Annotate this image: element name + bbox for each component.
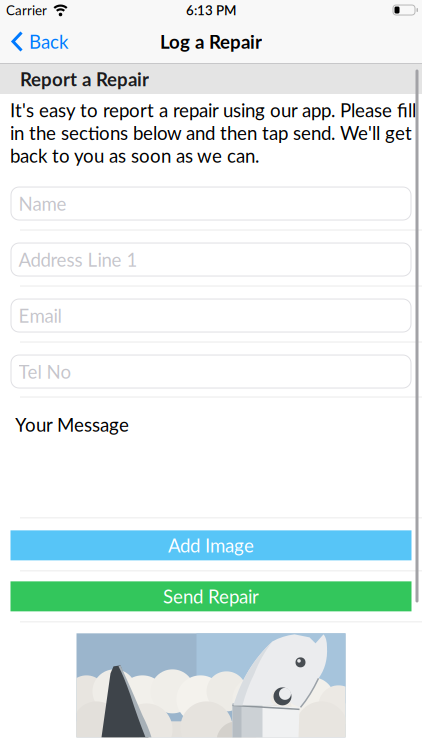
button[interactable]: Send Repair xyxy=(10,581,411,611)
staticText: back to you as soon as we can. xyxy=(10,145,259,166)
staticText: Name xyxy=(18,193,66,214)
staticText: in the sections below and then tap send.… xyxy=(10,122,412,144)
staticText: Report a Repair xyxy=(20,68,149,90)
button[interactable]: Add Image xyxy=(10,530,411,560)
staticText: Back xyxy=(29,31,68,52)
staticText: Send Repair xyxy=(163,585,259,607)
staticText: Carrier xyxy=(6,2,47,18)
button[interactable]: Email xyxy=(10,298,411,332)
staticText: Log a Repair xyxy=(160,31,262,52)
button[interactable]: Address Line 1 xyxy=(10,242,411,276)
staticText: It's easy to report a repair using our a… xyxy=(10,99,416,121)
staticText: Email xyxy=(18,305,61,326)
staticText: Tel No xyxy=(18,361,71,382)
staticText: Your Message xyxy=(15,413,129,435)
button[interactable]: Tel No xyxy=(10,354,411,388)
button[interactable]: Back xyxy=(11,31,68,52)
staticText: 6:13 PM xyxy=(186,2,236,18)
button[interactable]: Name xyxy=(10,186,411,220)
button[interactable]: Your Message xyxy=(0,435,422,517)
staticText: Address Line 1 xyxy=(18,249,137,270)
staticText: Add Image xyxy=(168,534,254,556)
